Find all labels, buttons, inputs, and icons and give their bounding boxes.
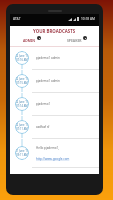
button[interactable]: 22 June '16: [10, 47, 99, 70]
staticText: AT&T: [13, 17, 21, 21]
staticText: 10:18 AM: [81, 17, 95, 21]
staticText: 07:11 AM: [16, 127, 28, 131]
staticText: pjademo1: [36, 102, 51, 106]
staticText: 09:11 AM: [16, 153, 28, 157]
button[interactable]: 22 June '16: [10, 70, 99, 93]
staticText: Hello pjademo1,: [36, 146, 60, 150]
staticText: 07:14 AM: [16, 104, 28, 108]
staticText: 22 June '16: [15, 77, 29, 81]
staticText: asdfasf sf: [36, 125, 50, 129]
staticText: SPEAKER: [67, 38, 82, 43]
staticText: ADMIN: [23, 38, 36, 43]
button[interactable]: 22 June '16: [10, 93, 99, 116]
button[interactable]: SPEAKER: [54, 36, 99, 41]
staticText: pjademo1 admin: [36, 56, 60, 60]
staticText: http://www.google.com: [36, 157, 70, 161]
staticText: YOUR BROADCASTS: [33, 28, 76, 34]
button[interactable]: 21 June '16: [10, 139, 99, 168]
staticText: 07:15 AM: [16, 81, 28, 85]
staticText: 21 June '16: [15, 149, 29, 153]
button[interactable]: 22 June '16: [10, 116, 99, 139]
staticText: pjademo1 admin: [36, 79, 60, 83]
staticText: 22 June '16: [15, 100, 29, 104]
staticText: 22 June '16: [15, 123, 29, 127]
staticText: 22 June '16: [15, 54, 29, 58]
staticText: 07:16 AM: [16, 58, 28, 62]
button[interactable]: ADMIN: [10, 36, 54, 41]
